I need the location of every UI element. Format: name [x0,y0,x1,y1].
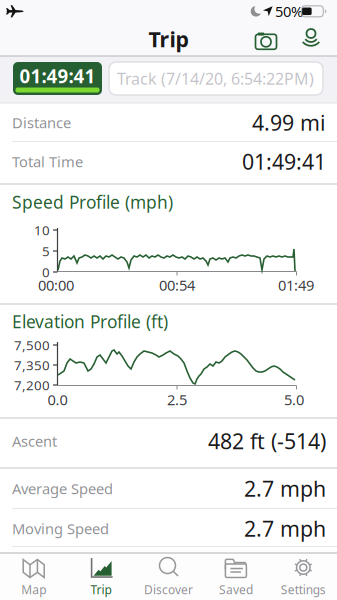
staticText: 2.5 [167,390,187,409]
button[interactable] [251,28,281,52]
button[interactable]: Track (7/14/20, 6:54:22PM) [109,62,323,95]
staticText: Speed Profile (mph) [12,190,173,213]
staticText: 5.0 [284,390,304,409]
staticText: 01:49:41 [242,147,326,176]
staticText: Track (7/14/20, 6:54:22PM) [117,68,314,89]
staticText: 10 [34,221,50,239]
staticText: 01:49:41 [19,64,95,88]
button[interactable] [298,28,324,52]
staticText: Trip [91,581,112,597]
staticText: 7,500 [14,336,50,354]
staticText: 7,200 [14,376,50,394]
staticText: 4.99 mi [252,108,326,137]
staticText: 0.0 [47,390,67,409]
staticText: 50% [275,2,303,21]
staticText: Average Speed [12,479,113,498]
staticText: 00:54 [159,275,195,295]
staticText: Distance [12,113,71,132]
staticText: 482 ft (-514) [208,427,326,455]
staticText: Settings [281,581,326,597]
staticText: 7,350 [14,356,50,374]
staticText: Saved [219,581,253,597]
button[interactable]: Trip [68,554,134,600]
staticText: Map [21,581,46,597]
staticText: Discover [144,581,193,597]
staticText: Elevation Profile (ft) [12,310,168,333]
staticText: 5 [42,242,50,260]
staticText: 2.7 mph [244,514,326,543]
staticText: 01:49 [278,275,314,295]
button[interactable]: Map [1,554,67,600]
staticText: Moving Speed [12,519,109,538]
button[interactable]: 01:49:41 [13,62,102,95]
button[interactable]: Saved [203,554,269,600]
staticText: Total Time [12,152,83,171]
staticText: 2.7 mph [244,474,326,503]
button[interactable]: Settings [270,554,336,600]
staticText: Ascent [12,431,57,451]
button[interactable]: Discover [135,554,201,600]
staticText: 0 [42,263,50,281]
staticText: 00:00 [38,275,74,295]
staticText: Trip [148,25,188,53]
